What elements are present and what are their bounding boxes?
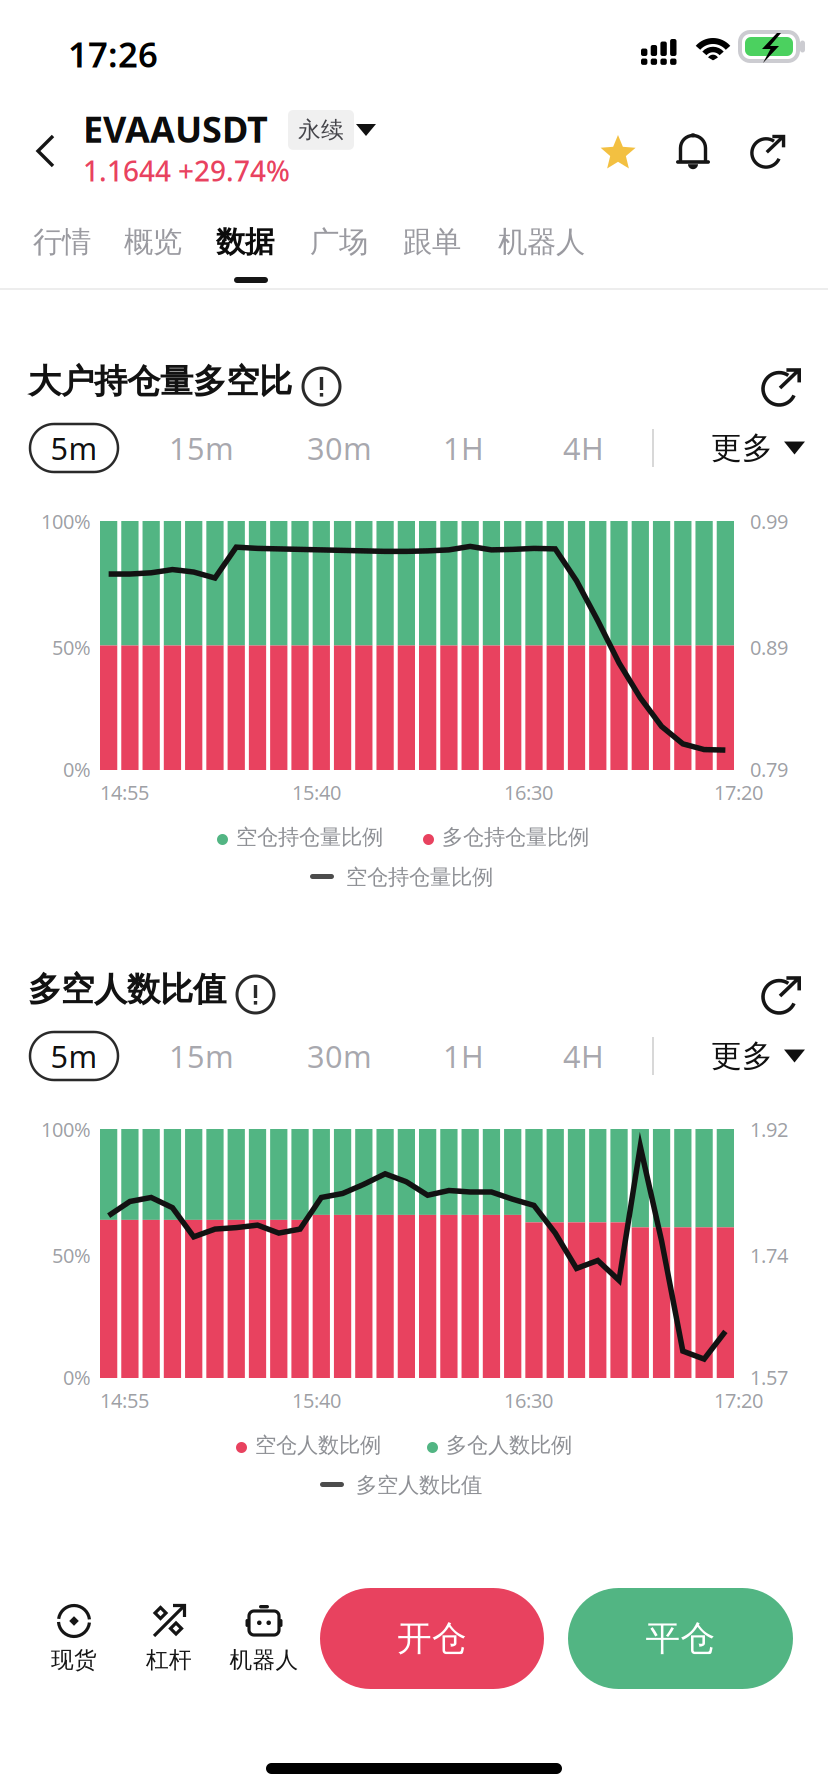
button[interactable]: Open full chart	[748, 960, 816, 1028]
staticText: 4H	[563, 428, 604, 468]
staticText: 100%	[41, 1116, 91, 1143]
staticText: 50%	[52, 634, 91, 661]
button[interactable]: Price alert	[658, 115, 728, 189]
button[interactable]: 更多	[701, 424, 815, 472]
staticText: 行情	[33, 224, 91, 260]
staticText: 1.92	[750, 1116, 788, 1143]
button[interactable]: 数据	[208, 206, 282, 278]
staticText: 16:30	[504, 1387, 553, 1414]
button[interactable]: 概览	[116, 206, 190, 278]
button[interactable]: Open full chart	[748, 352, 816, 420]
button[interactable]: 4H	[551, 424, 616, 472]
staticText: 1H	[443, 428, 484, 468]
button[interactable]: 1H	[431, 1032, 496, 1080]
staticText: 1.74	[750, 1242, 788, 1269]
button[interactable]: 15m	[157, 424, 246, 472]
staticText: 30m	[307, 1036, 372, 1076]
button[interactable]: 更多	[701, 1032, 815, 1080]
staticText: 多空人数比值	[28, 969, 226, 1010]
staticText: 0%	[63, 756, 91, 783]
staticText: 0%	[63, 1364, 91, 1391]
staticText: 杠杆	[146, 1646, 192, 1674]
button[interactable]: 4H	[551, 1032, 616, 1080]
staticText: 机器人	[229, 1646, 298, 1674]
staticText: 空仓持仓量比例	[346, 864, 493, 890]
button[interactable]: Share	[733, 115, 804, 186]
staticText: 50%	[52, 1242, 91, 1269]
staticText: 大户持仓量多空比	[28, 361, 292, 402]
staticText: 30m	[307, 428, 372, 468]
staticText: 1.57	[750, 1364, 788, 1391]
button[interactable]: 30m	[295, 424, 384, 472]
staticText: 平仓	[645, 1617, 715, 1660]
staticText: 1H	[443, 1036, 484, 1076]
staticText: 17:26	[68, 31, 158, 77]
staticText: 跟单	[403, 224, 461, 260]
button[interactable]: 机器人	[490, 206, 593, 278]
staticText: 15m	[169, 1036, 234, 1076]
button[interactable]: 行情	[25, 206, 99, 278]
staticText: 15:40	[292, 1387, 341, 1414]
staticText: 5m	[50, 428, 97, 468]
staticText: 机器人	[498, 224, 585, 260]
staticText: 14:55	[100, 1387, 149, 1414]
staticText: 数据	[216, 224, 274, 260]
staticText: 空仓人数比例	[255, 1432, 381, 1458]
staticText: 5m	[50, 1036, 97, 1076]
staticText: EVAAUSDT	[83, 105, 268, 153]
button[interactable]: 现货	[24, 1602, 124, 1710]
staticText: 广场	[310, 224, 368, 260]
button[interactable]: 开仓	[320, 1588, 544, 1689]
button[interactable]: 杠杆	[119, 1602, 219, 1710]
staticText: 16:30	[504, 779, 553, 806]
staticText: 15m	[169, 428, 234, 468]
button[interactable]: 1H	[431, 424, 496, 472]
staticText: 多空人数比值	[356, 1472, 482, 1498]
button[interactable]: 5m	[30, 1032, 118, 1080]
staticText: 永续	[298, 116, 344, 144]
staticText: 现货	[51, 1646, 97, 1674]
button[interactable]: 广场	[302, 206, 376, 278]
staticText: 空仓持仓量比例	[236, 824, 383, 850]
staticText: 17:20	[714, 1387, 763, 1414]
staticText: 概览	[124, 224, 182, 260]
button[interactable]: 机器人	[209, 1602, 319, 1710]
staticText: 4H	[563, 1036, 604, 1076]
staticText: 14:55	[100, 779, 149, 806]
button[interactable]: 平仓	[568, 1588, 793, 1689]
button[interactable]: Add to favorites	[582, 117, 654, 189]
staticText: 0.99	[750, 508, 788, 535]
button[interactable]: 跟单	[395, 206, 469, 278]
button[interactable]: Switch contract	[342, 110, 390, 150]
button[interactable]: Back	[16, 114, 75, 188]
staticText: 15:40	[292, 779, 341, 806]
staticText: 17:20	[714, 779, 763, 806]
button[interactable]: 15m	[157, 1032, 246, 1080]
staticText: 0.79	[750, 756, 788, 783]
staticText: 多仓人数比例	[446, 1432, 572, 1458]
staticText: 多仓持仓量比例	[442, 824, 589, 850]
staticText: 100%	[41, 508, 91, 535]
button[interactable]: 30m	[295, 1032, 384, 1080]
staticText: 更多	[711, 429, 773, 467]
button[interactable]: 5m	[30, 424, 118, 472]
staticText: 0.89	[750, 634, 788, 661]
staticText: 更多	[711, 1037, 773, 1075]
staticText: 1.1644 +29.74%	[83, 152, 290, 189]
staticText: 开仓	[397, 1617, 467, 1660]
